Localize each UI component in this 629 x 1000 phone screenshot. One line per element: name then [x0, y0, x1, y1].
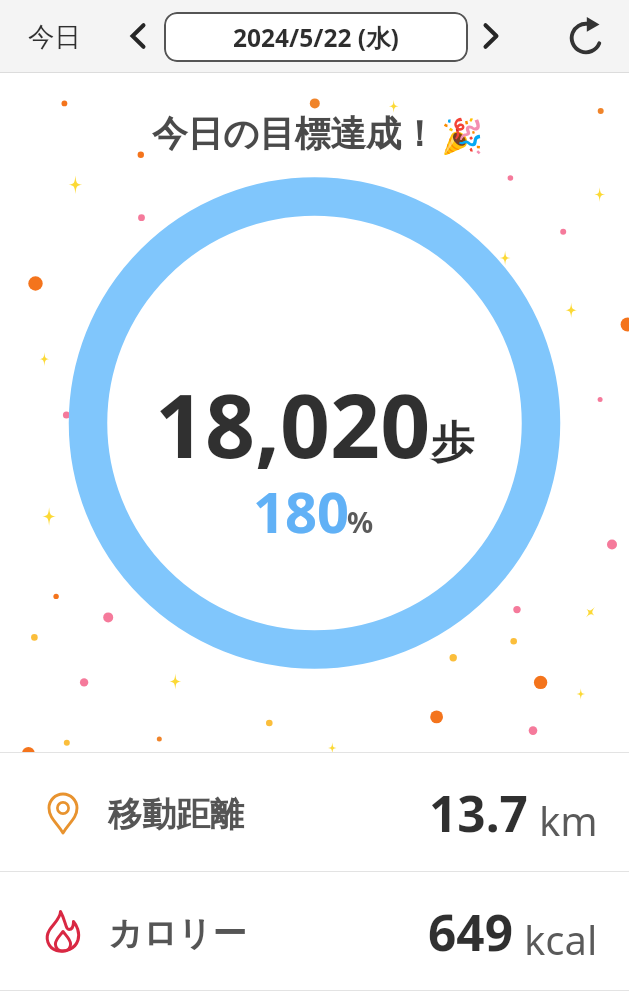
staticText: カロリー: [108, 912, 247, 955]
button[interactable]: 2024/5/22 (水): [164, 12, 468, 62]
staticText: 今日: [28, 20, 81, 53]
staticText: 180: [253, 473, 350, 549]
button[interactable]: 今日: [28, 13, 81, 60]
staticText: 18,020: [155, 364, 431, 483]
staticText: 今日の目標達成！: [152, 112, 437, 157]
staticText: 歩: [431, 416, 474, 470]
staticText: 🎉: [441, 116, 484, 156]
button[interactable]: カロリー: [0, 872, 629, 990]
staticText: 649: [428, 898, 513, 965]
staticText: 2024/5/22 (水): [233, 21, 399, 54]
staticText: kcal: [524, 912, 598, 966]
button[interactable]: 移動距離: [0, 753, 629, 871]
staticText: %: [347, 502, 374, 541]
staticText: km: [539, 793, 598, 847]
staticText: 13.7: [429, 779, 528, 846]
button[interactable]: Previous day: [114, 12, 162, 60]
button[interactable]: Refresh: [562, 14, 610, 62]
button[interactable]: Next day: [467, 12, 515, 60]
staticText: 移動距離: [108, 793, 244, 836]
